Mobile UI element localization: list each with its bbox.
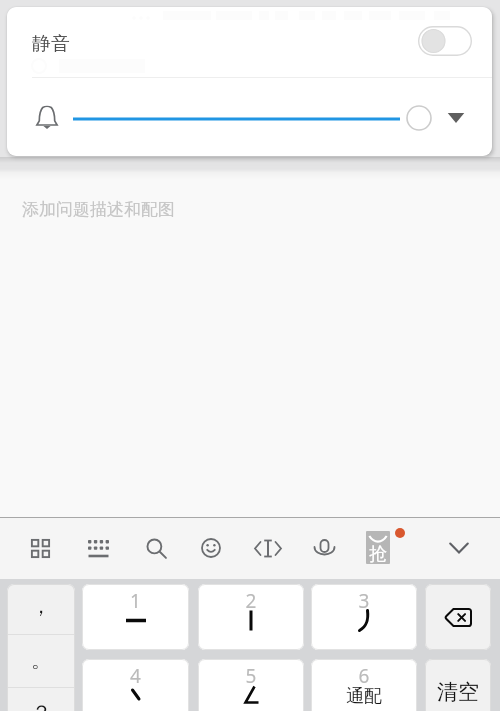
button[interactable]: Stroke key 5 [198,659,304,711]
staticText: 通配 [311,685,417,708]
staticText: 抢 [369,543,387,564]
staticText: 4 [82,663,189,689]
staticText: 1 [82,588,189,614]
button[interactable]: Backspace [425,584,491,650]
button[interactable]: ， [7,584,75,634]
button[interactable]: Stroke key 4 [82,659,189,711]
staticText: 5 [198,663,304,689]
button[interactable]: Emoji [189,526,233,570]
button[interactable]: 添加问题描述和配图 [22,199,175,220]
staticText: 6 [311,663,417,689]
staticText: 。 [31,648,51,673]
button[interactable]: Hide keyboard [437,526,481,570]
button[interactable]: Stroke key 1 [82,584,189,650]
button[interactable]: Apps [18,526,62,570]
button[interactable]: Volume slider [7,78,492,156]
button[interactable]: 。 [7,634,75,687]
button[interactable]: Stroke key 6 [311,659,417,711]
button[interactable]: Move cursor [246,526,290,570]
button[interactable]: Volume slider [73,113,400,125]
staticText: 3 [311,588,417,614]
button[interactable]: Keyboard [76,526,120,570]
button[interactable]: 清空 [425,659,491,711]
button[interactable]: Stroke key 2 [198,584,304,650]
button[interactable]: Search [134,526,178,570]
button[interactable]: ？ [7,687,75,711]
staticText: ？ [31,700,52,711]
button[interactable]: Voice input [302,526,346,570]
button[interactable]: 静音 [7,7,492,78]
button[interactable]: Red packet [359,526,403,570]
staticText: 静音 [32,32,70,56]
staticText: ， [31,594,51,619]
staticText: 2 [198,588,304,614]
button[interactable]: Mute toggle [413,21,477,61]
staticText: 清空 [437,679,479,705]
button[interactable]: Stroke key 3 [311,584,417,650]
